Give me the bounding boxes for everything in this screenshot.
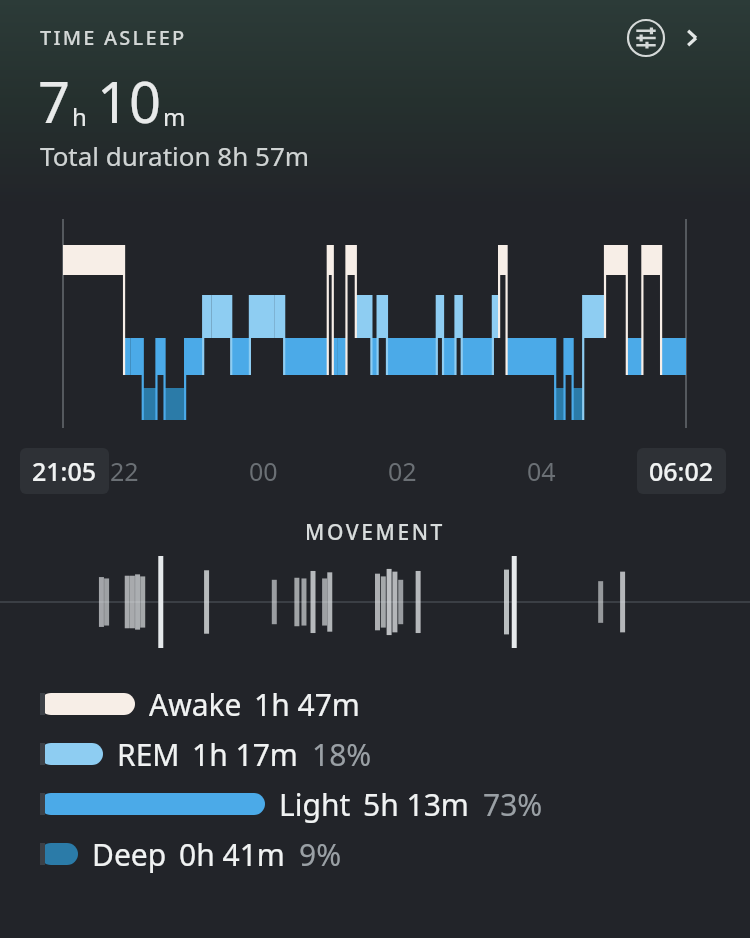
staticText: 22: [110, 454, 139, 488]
staticText: Awake: [149, 684, 242, 725]
button[interactable]: Deep: [0, 829, 750, 879]
staticText: 1h 17m: [192, 734, 298, 775]
button[interactable]: Sleep settings: [626, 18, 666, 58]
staticText: MOVEMENT: [305, 518, 446, 547]
staticText: Deep: [92, 834, 167, 875]
staticText: Light: [279, 784, 351, 825]
staticText: REM: [117, 734, 180, 775]
staticText: 73%: [483, 784, 543, 825]
staticText: m: [163, 100, 186, 133]
button[interactable]: Light: [0, 779, 750, 829]
staticText: 0h 41m: [179, 834, 285, 875]
staticText: 9%: [299, 834, 342, 875]
staticText: Total duration 8h 57m: [40, 138, 310, 173]
button[interactable]: Open sleep details: [672, 16, 716, 60]
staticText: 04: [527, 454, 556, 488]
staticText: 1h 47m: [254, 684, 360, 725]
staticText: 5h 13m: [363, 784, 469, 825]
staticText: 21:05: [32, 454, 97, 488]
button[interactable]: REM: [0, 729, 750, 779]
staticText: h: [72, 100, 87, 133]
staticText: 10: [97, 63, 162, 139]
staticText: 00: [249, 454, 278, 488]
staticText: 18%: [312, 734, 372, 775]
button[interactable]: Awake: [0, 679, 750, 729]
staticText: TIME ASLEEP: [40, 24, 187, 51]
staticText: 7: [38, 63, 71, 139]
staticText: 02: [388, 454, 417, 488]
staticText: 06:02: [649, 454, 714, 488]
